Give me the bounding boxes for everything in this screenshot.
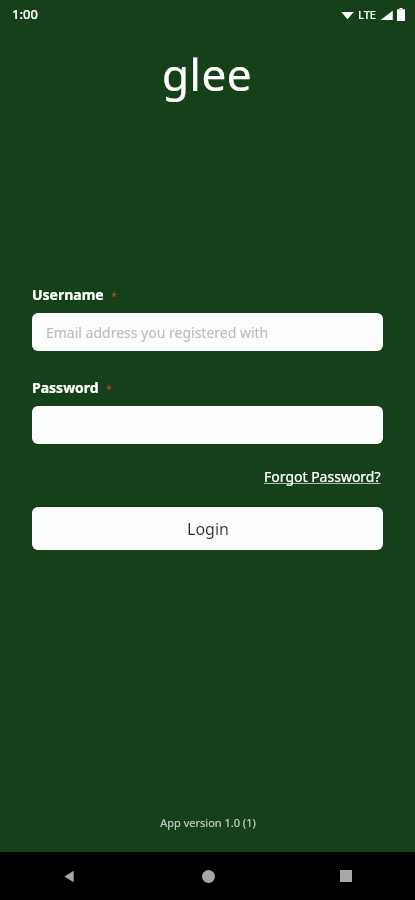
staticText: LTE (358, 7, 376, 22)
staticText: Username * (32, 285, 118, 304)
button[interactable]: Login (32, 507, 383, 550)
staticText: Password * (32, 378, 113, 397)
staticText: App version 1.0 (1) (160, 815, 256, 830)
staticText: Email address you registered with (46, 323, 269, 342)
staticText: 1:00 (12, 5, 38, 23)
staticText: Login (187, 518, 229, 540)
button[interactable]: Email address you registered with (32, 313, 383, 351)
staticText: Forgot Password? (264, 467, 381, 486)
staticText: glee (162, 44, 253, 104)
button[interactable] (32, 406, 383, 444)
button[interactable]: Home (139, 852, 277, 900)
button[interactable]: Back (0, 852, 139, 900)
button[interactable]: Forgot Password? (262, 464, 383, 489)
button[interactable]: Recent apps (277, 852, 415, 900)
